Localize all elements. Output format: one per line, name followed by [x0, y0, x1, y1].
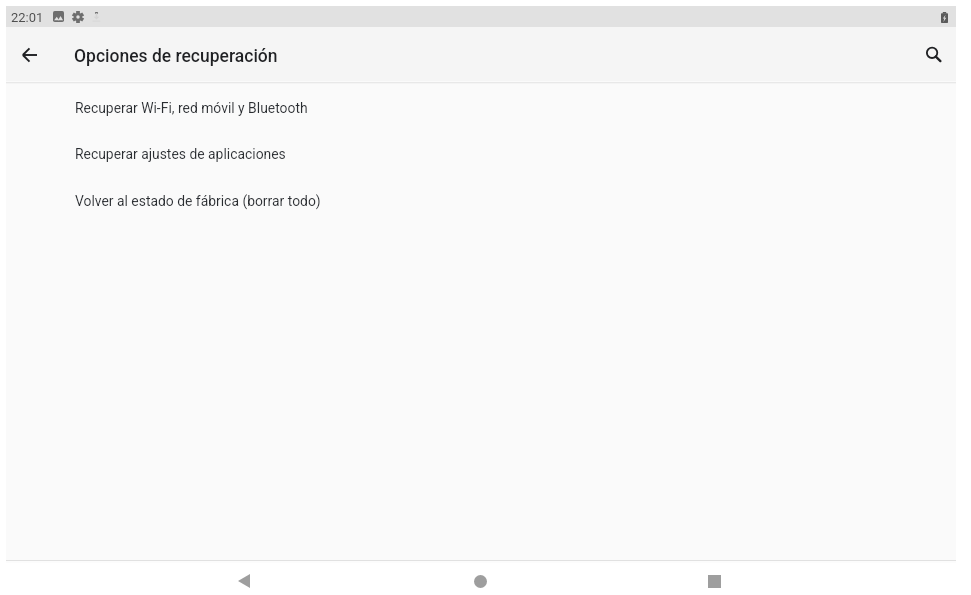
button[interactable]: Navigate up [7, 33, 51, 77]
button[interactable]: Search [912, 33, 956, 77]
button[interactable]: Recuperar Wi-Fi, red móvil y Bluetooth [6, 84, 956, 131]
button[interactable]: Recuperar ajustes de aplicaciones [6, 130, 956, 177]
staticText: Recuperar Wi-Fi, red móvil y Bluetooth [75, 100, 308, 116]
staticText: 22:01 [11, 10, 44, 25]
button[interactable]: Recent apps [692, 559, 736, 595]
staticText: Volver al estado de fábrica (borrar todo… [75, 193, 321, 209]
button[interactable]: Home [458, 559, 502, 595]
staticText: Recuperar ajustes de aplicaciones [75, 146, 286, 162]
staticText: Opciones de recuperación [74, 46, 278, 67]
button[interactable]: Volver al estado de fábrica (borrar todo… [6, 177, 956, 224]
button[interactable]: Back [222, 559, 266, 595]
